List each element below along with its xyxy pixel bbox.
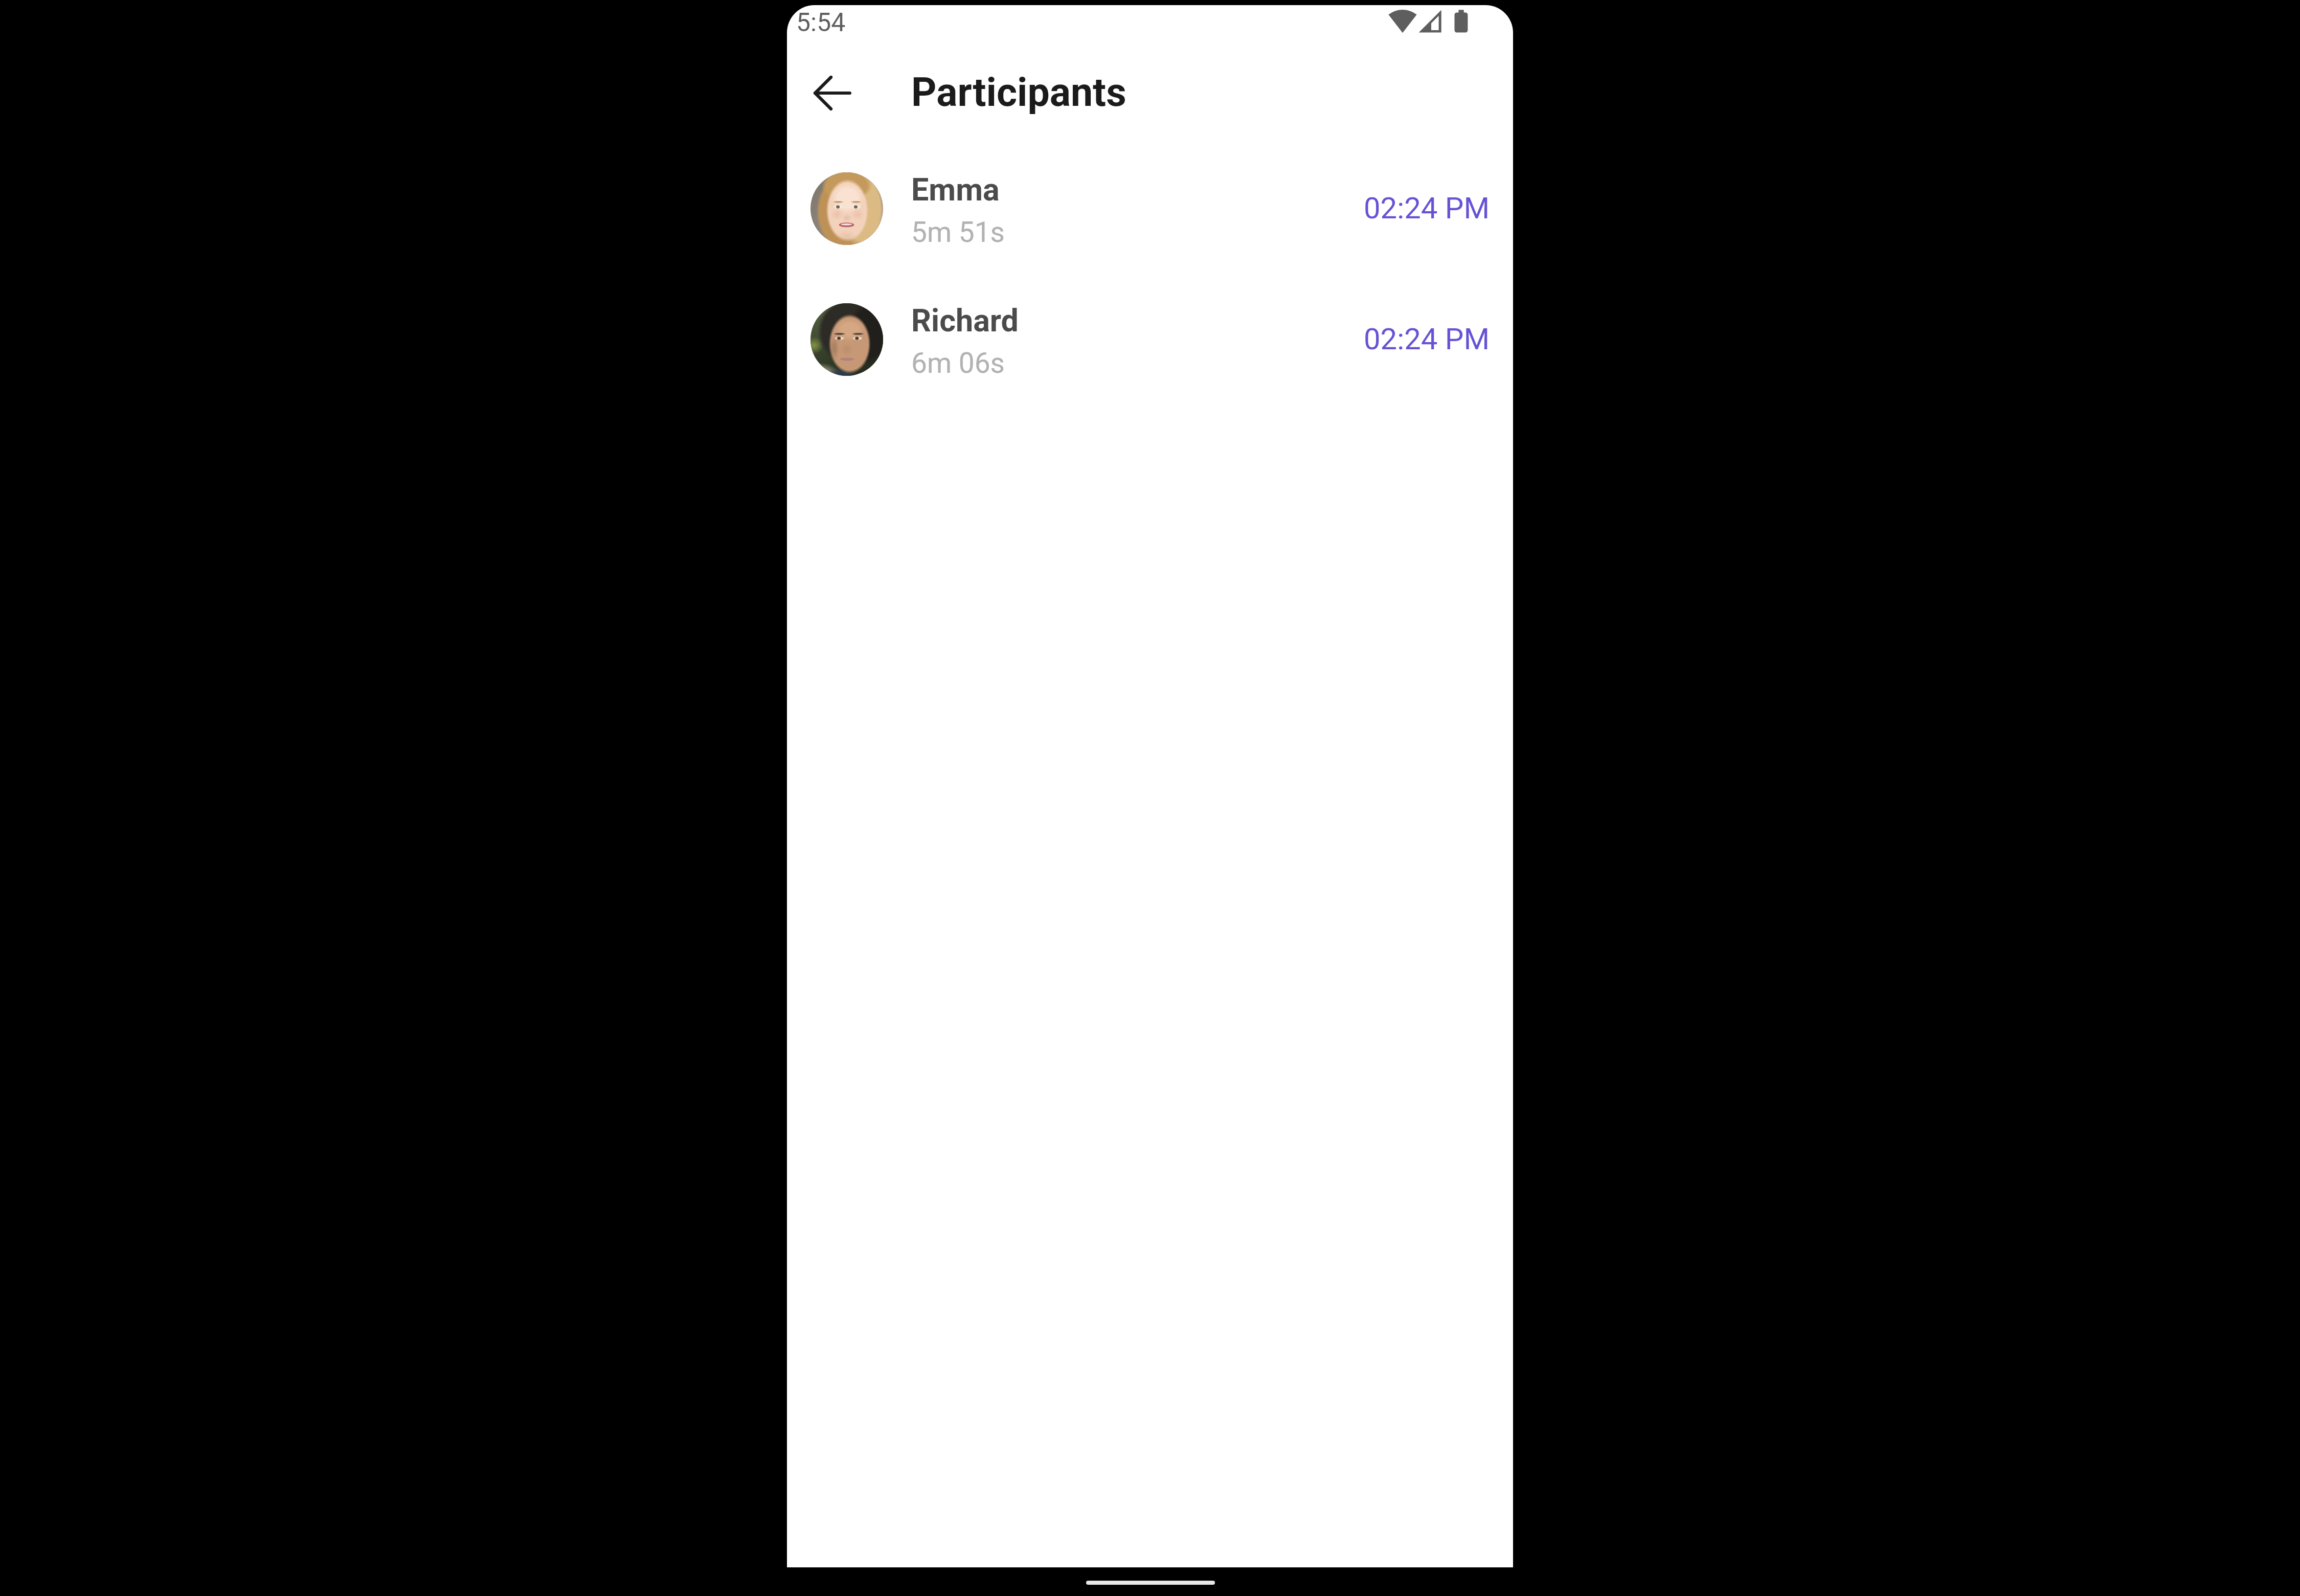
staticText: 02:24 PM <box>1364 322 1490 356</box>
staticText: 6m 06s <box>911 347 1005 379</box>
staticText: Emma <box>911 171 1000 208</box>
button[interactable]: Richard <box>787 293 1513 386</box>
staticText: 02:24 PM <box>1364 191 1490 226</box>
staticText: 5:54 <box>796 8 846 38</box>
staticText: Participants <box>911 70 1126 116</box>
button[interactable]: Back <box>802 62 863 124</box>
button[interactable]: Emma <box>787 162 1513 255</box>
staticText: Richard <box>911 302 1019 339</box>
staticText: 5m 51s <box>911 216 1005 249</box>
